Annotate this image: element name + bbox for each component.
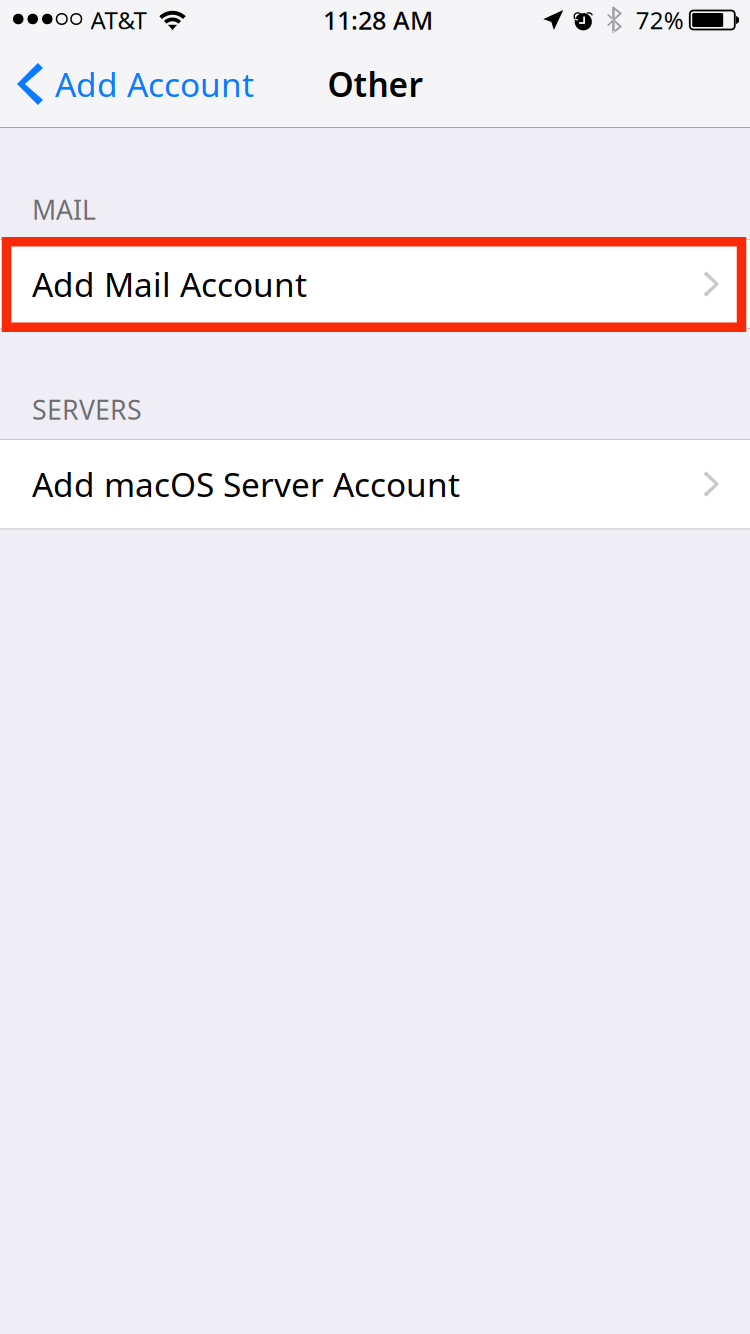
staticText: Add macOS Server Account [32,462,460,506]
staticText: SERVERS [32,392,142,427]
staticText: Other [327,62,422,106]
staticText: AT&T [90,4,146,36]
staticText: Add Mail Account [32,262,307,306]
staticText: Add Account [55,62,254,106]
button[interactable]: Add macOS Server Account [0,440,750,528]
staticText: 11:28 AM [323,3,433,37]
staticText: MAIL [32,192,96,227]
button[interactable]: Add Mail Account [0,240,750,328]
button[interactable]: Add Account [0,40,268,128]
staticText: 72% [636,4,684,36]
